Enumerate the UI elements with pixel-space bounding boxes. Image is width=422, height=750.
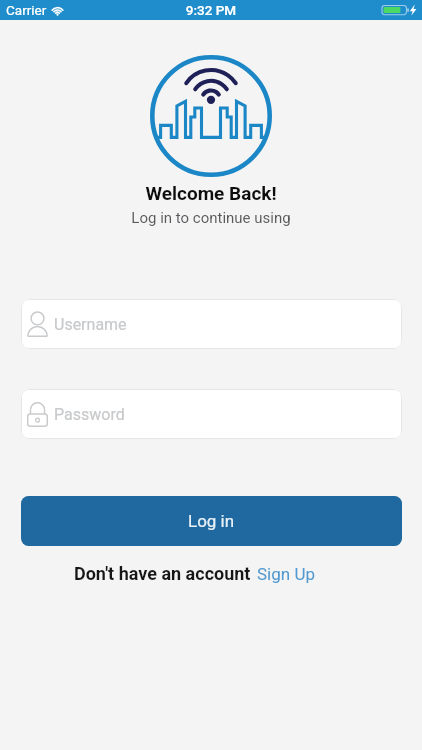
button[interactable]: Sign Up xyxy=(257,564,315,584)
button[interactable]: Username xyxy=(21,299,402,349)
staticText: Log in xyxy=(188,511,235,531)
staticText: Carrier xyxy=(6,2,47,18)
staticText: Don't have an account xyxy=(74,563,251,584)
staticText: 9:32 PM xyxy=(0,2,422,18)
button[interactable]: Password xyxy=(21,389,402,439)
staticText: Username xyxy=(54,315,127,334)
staticText: Password xyxy=(54,405,125,424)
staticText: Sign Up xyxy=(257,564,315,584)
staticText: Welcome Back! xyxy=(0,182,422,204)
staticText: Log in to continue using xyxy=(0,209,422,227)
button[interactable]: Log in xyxy=(21,496,402,546)
